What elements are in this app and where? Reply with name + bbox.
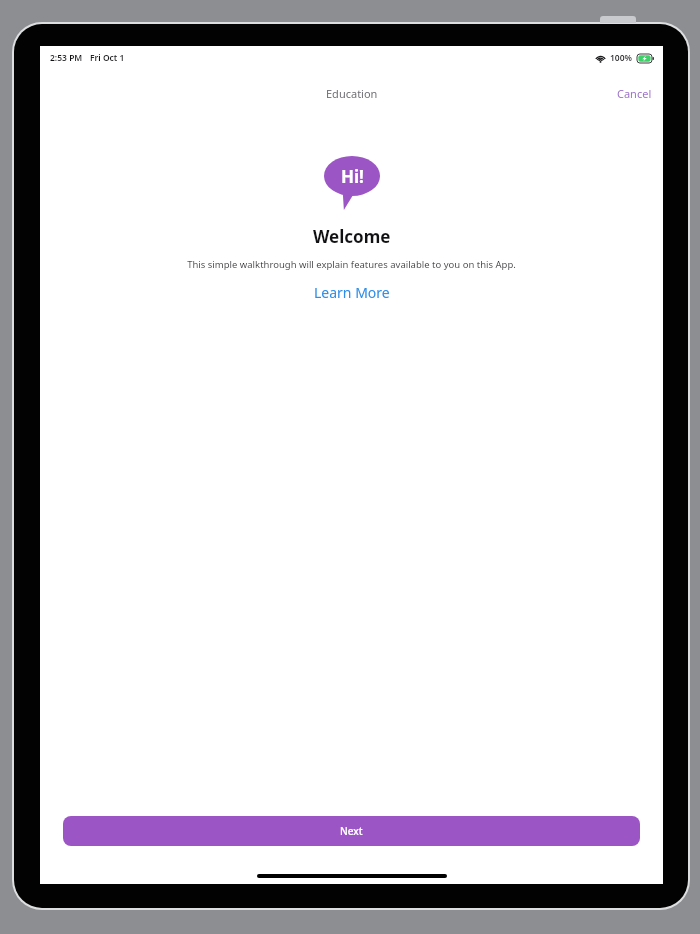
staticText: Cancel xyxy=(617,86,652,101)
staticText: Hi! xyxy=(341,165,364,188)
staticText: Education xyxy=(326,86,378,101)
button[interactable]: Learn More xyxy=(302,280,402,305)
button[interactable]: Cancel xyxy=(606,79,663,108)
staticText: Next xyxy=(340,824,363,838)
button[interactable]: Next xyxy=(63,816,640,846)
staticText: Welcome xyxy=(313,225,391,248)
staticText: 100% xyxy=(610,52,633,64)
staticText: Fri Oct 1 xyxy=(90,52,125,64)
staticText: 2:53 PM xyxy=(50,52,83,64)
staticText: This simple walkthrough will explain fea… xyxy=(187,258,516,271)
staticText: Learn More xyxy=(314,283,390,302)
